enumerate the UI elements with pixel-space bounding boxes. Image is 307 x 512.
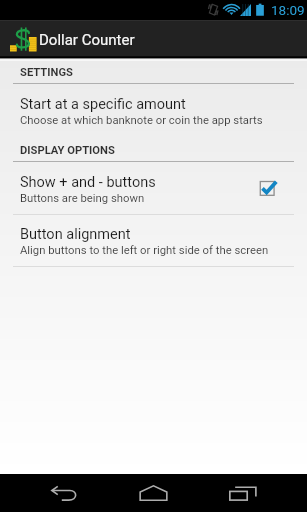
staticText: Start at a specific amount: [20, 96, 186, 113]
staticText: Choose at which banknote or coin the app…: [20, 114, 263, 127]
staticText: SETTINGS: [20, 66, 73, 79]
staticText: Button alignment: [20, 226, 131, 243]
staticText: Show + and - buttons: [20, 174, 156, 191]
button[interactable]: Back: [44, 479, 84, 507]
button[interactable]: Start at a specific amount: [0, 88, 307, 133]
button[interactable]: Show + and - buttons: [0, 166, 307, 211]
staticText: Dollar Counter: [39, 31, 135, 49]
button[interactable]: Home: [133, 479, 173, 507]
button[interactable]: Button alignment: [0, 218, 307, 263]
staticText: Buttons are being shown: [20, 192, 145, 205]
staticText: 18:09: [271, 2, 305, 18]
staticText: Align buttons to the left or right side …: [20, 244, 269, 257]
button[interactable]: Recent apps: [223, 479, 263, 507]
button[interactable]: Show plus and minus buttons: [255, 178, 279, 202]
staticText: DISPLAY OPTIONS: [20, 144, 115, 157]
